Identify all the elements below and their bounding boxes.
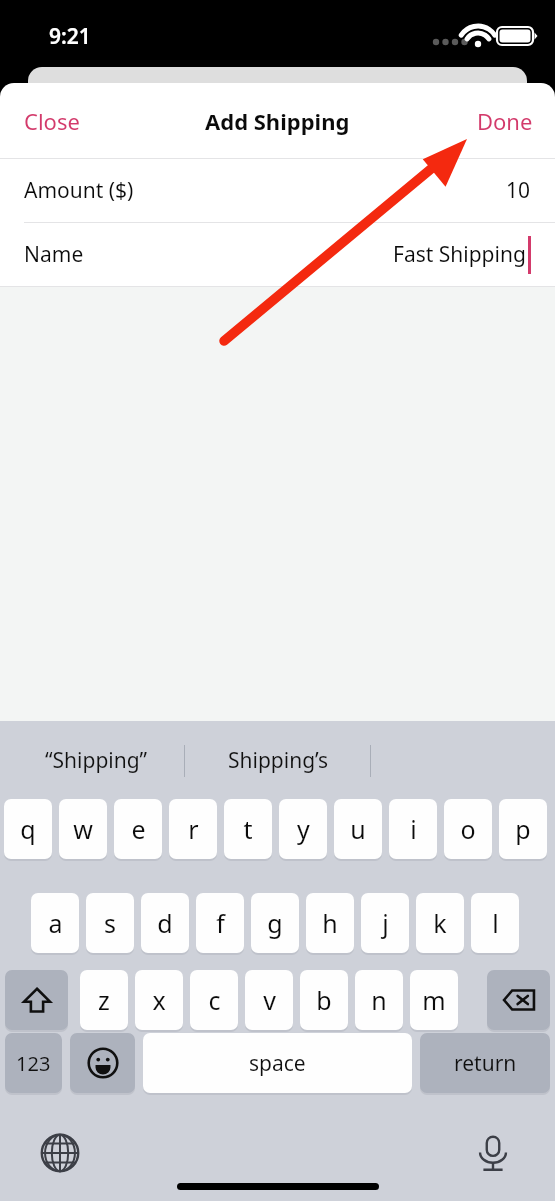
- button[interactable]: y: [279, 799, 327, 859]
- button[interactable]: space: [143, 1033, 412, 1093]
- staticText: z: [98, 983, 110, 1017]
- button[interactable]: r: [169, 799, 217, 859]
- staticText: 9:21: [49, 22, 91, 51]
- staticText: r: [188, 812, 199, 846]
- staticText: Close: [24, 106, 80, 136]
- button[interactable]: z: [80, 970, 128, 1030]
- staticText: Name: [24, 240, 84, 269]
- button[interactable]: Shipping’s: [190, 721, 366, 799]
- button[interactable]: “Shipping”: [8, 721, 184, 799]
- staticText: n: [371, 983, 387, 1017]
- button[interactable]: d: [141, 893, 189, 953]
- staticText: a: [48, 906, 63, 940]
- button[interactable]: a: [31, 893, 79, 953]
- button[interactable]: u: [334, 799, 382, 859]
- button[interactable]: 123: [5, 1033, 62, 1093]
- staticText: Done: [477, 106, 533, 136]
- button[interactable]: l: [471, 893, 519, 953]
- staticText: b: [316, 983, 332, 1017]
- button[interactable]: Change keyboard language: [36, 1129, 84, 1177]
- button[interactable]: j: [361, 893, 409, 953]
- staticText: h: [322, 906, 338, 940]
- staticText: “Shipping”: [45, 746, 148, 775]
- staticText: x: [152, 983, 166, 1017]
- button[interactable]: i: [389, 799, 437, 859]
- button[interactable]: c: [190, 970, 238, 1030]
- staticText: Shipping’s: [228, 746, 329, 775]
- staticText: space: [249, 1049, 306, 1078]
- staticText: s: [104, 906, 116, 940]
- staticText: Fast Shipping: [393, 240, 526, 269]
- staticText: w: [73, 812, 93, 846]
- staticText: return: [454, 1049, 517, 1078]
- button[interactable]: return: [420, 1033, 550, 1093]
- staticText: Amount ($): [24, 176, 134, 205]
- button[interactable]: Amount ($): [0, 159, 555, 222]
- button[interactable]: Close: [0, 94, 104, 148]
- button[interactable]: Emoji: [70, 1033, 135, 1093]
- button[interactable]: Dictation: [469, 1129, 517, 1177]
- staticText: k: [433, 906, 447, 940]
- button[interactable]: s: [86, 893, 134, 953]
- staticText: g: [267, 906, 283, 940]
- button[interactable]: Name: [0, 223, 555, 286]
- button[interactable]: q: [4, 799, 52, 859]
- button[interactable]: x: [135, 970, 183, 1030]
- button[interactable]: b: [300, 970, 348, 1030]
- button[interactable]: f: [196, 893, 244, 953]
- staticText: 123: [16, 1050, 51, 1077]
- staticText: i: [410, 812, 417, 846]
- button[interactable]: k: [416, 893, 464, 953]
- button[interactable]: v: [245, 970, 293, 1030]
- button[interactable]: Shift: [5, 970, 68, 1030]
- staticText: m: [422, 983, 446, 1017]
- staticText: o: [460, 812, 476, 846]
- staticText: v: [263, 983, 276, 1017]
- button[interactable]: g: [251, 893, 299, 953]
- staticText: l: [492, 906, 499, 940]
- button[interactable]: n: [355, 970, 403, 1030]
- button[interactable]: t: [224, 799, 272, 859]
- button[interactable]: Backspace: [487, 970, 550, 1030]
- staticText: c: [208, 983, 221, 1017]
- staticText: j: [382, 906, 389, 940]
- button[interactable]: h: [306, 893, 354, 953]
- button[interactable]: w: [59, 799, 107, 859]
- button[interactable]: p: [499, 799, 547, 859]
- button[interactable]: m: [410, 970, 458, 1030]
- staticText: q: [20, 812, 36, 846]
- staticText: Add Shipping: [205, 106, 350, 136]
- staticText: 10: [506, 176, 531, 205]
- button[interactable]: Done: [455, 94, 555, 148]
- button[interactable]: e: [114, 799, 162, 859]
- staticText: e: [131, 812, 146, 846]
- staticText: d: [157, 906, 173, 940]
- button[interactable]: o: [444, 799, 492, 859]
- staticText: u: [350, 812, 366, 846]
- staticText: f: [216, 906, 225, 940]
- staticText: y: [297, 812, 310, 846]
- staticText: p: [515, 812, 531, 846]
- staticText: t: [243, 812, 253, 846]
